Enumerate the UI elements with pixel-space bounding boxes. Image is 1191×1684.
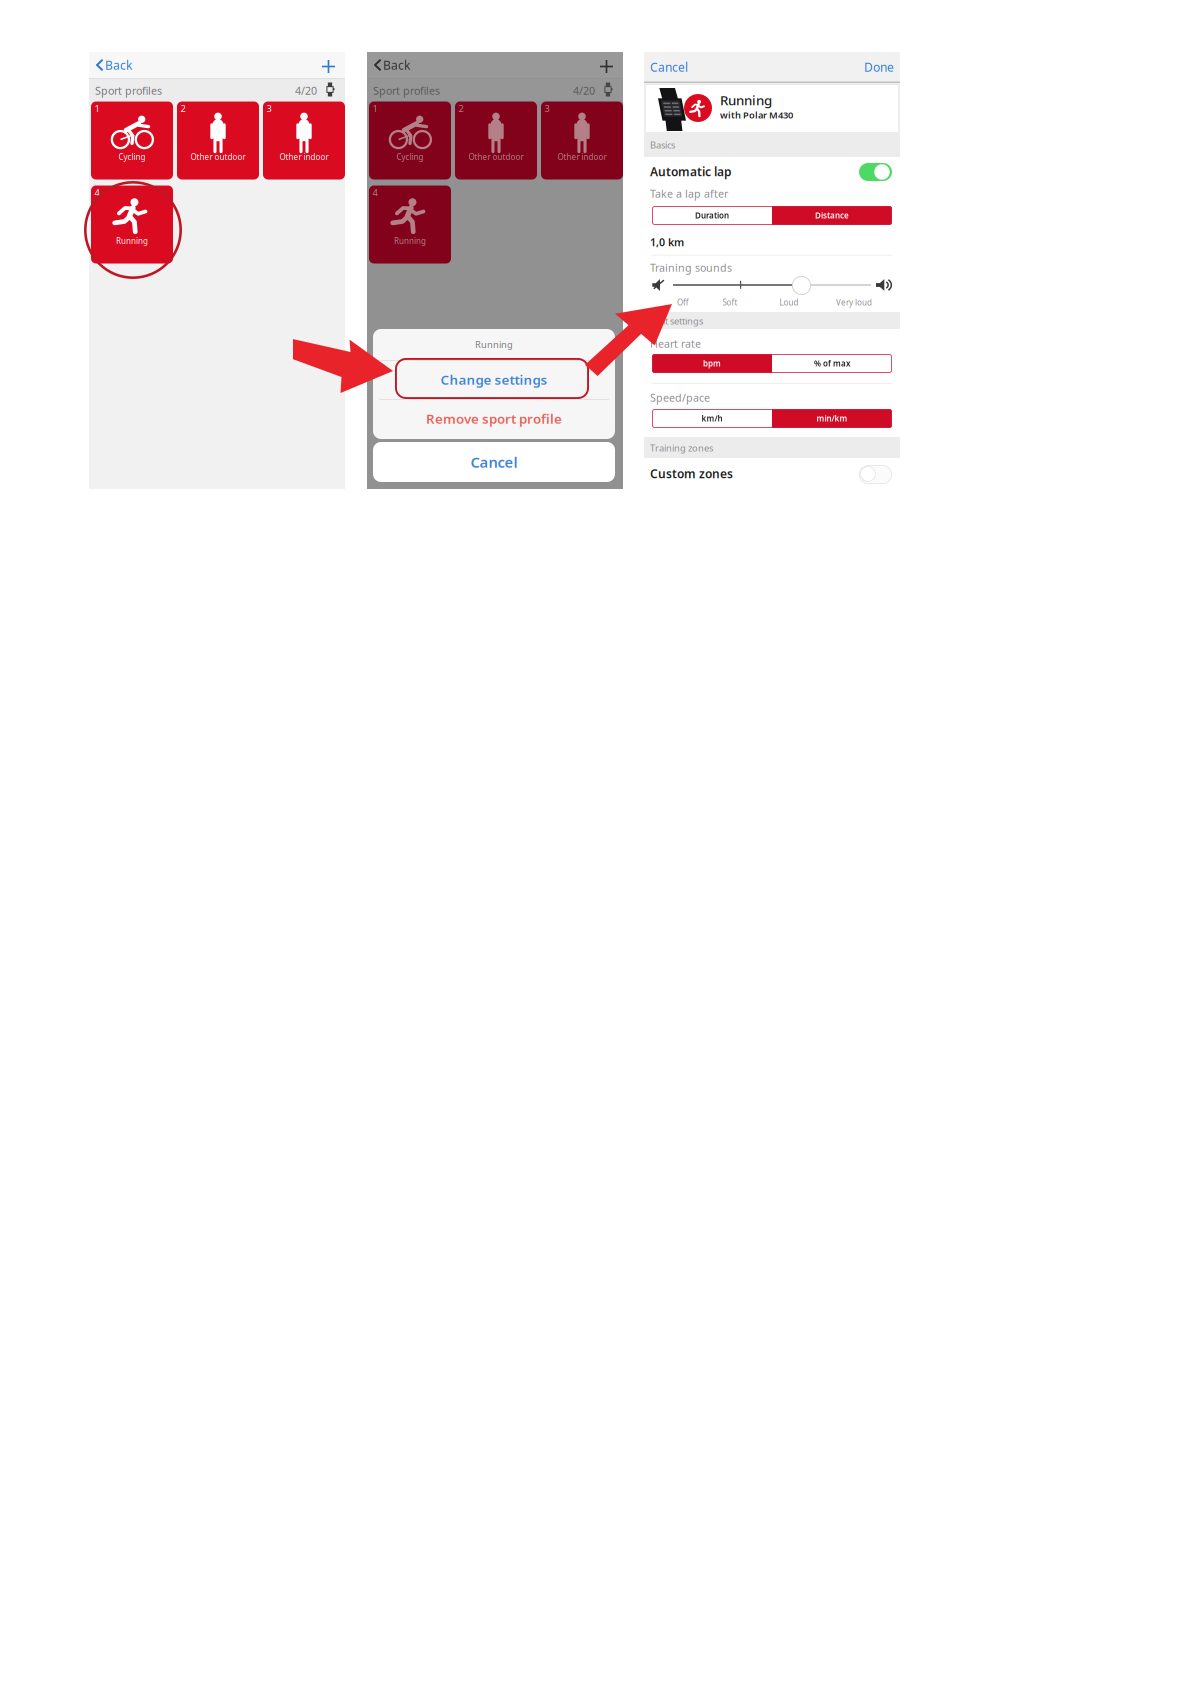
staticText: 4 xyxy=(372,186,377,199)
button[interactable]: 2 xyxy=(455,101,537,179)
staticText: Other outdoor xyxy=(190,152,245,162)
staticText: Back xyxy=(383,57,410,73)
button[interactable]: Add sport profile xyxy=(322,60,335,73)
staticText: Running xyxy=(116,236,148,246)
button[interactable]: Done xyxy=(824,59,894,75)
staticText: bpm xyxy=(703,358,721,369)
staticText: 3 xyxy=(544,102,549,115)
staticText: Sport profiles xyxy=(95,83,162,98)
staticText: Other indoor xyxy=(279,152,328,162)
staticText: Off xyxy=(677,297,689,308)
button[interactable]: Maximum training sounds xyxy=(876,278,892,292)
button[interactable]: Mute training sounds xyxy=(652,278,666,292)
button[interactable]: Cancel xyxy=(650,59,720,75)
staticText: Other outdoor xyxy=(468,152,523,162)
button[interactable]: Back xyxy=(374,57,436,73)
button[interactable]: Custom zones off xyxy=(859,465,892,484)
staticText: Done xyxy=(864,59,894,75)
staticText: with Polar M430 xyxy=(720,109,793,121)
button[interactable]: Add sport profile xyxy=(600,60,613,73)
staticText: Custom zones xyxy=(650,465,733,481)
button[interactable]: Back xyxy=(96,57,158,73)
staticText: 4 xyxy=(94,186,99,199)
staticText: Other indoor xyxy=(557,152,606,162)
button[interactable]: Remove sport profile xyxy=(373,399,615,438)
staticText: Sport profiles xyxy=(373,83,440,98)
button[interactable]: 3 xyxy=(263,101,345,179)
staticText: Automatic lap xyxy=(650,163,732,179)
button[interactable]: 4 xyxy=(369,185,451,263)
staticText: Running xyxy=(720,91,772,109)
staticText: Training sounds xyxy=(650,260,732,275)
staticText: Running xyxy=(475,338,513,351)
staticText: km/h xyxy=(701,413,722,424)
staticText: Take a lap after xyxy=(650,186,728,201)
button[interactable]: 1 xyxy=(369,101,451,179)
staticText: Remove sport profile xyxy=(426,410,562,427)
staticText: Soft xyxy=(722,297,737,308)
button[interactable]: Duration xyxy=(652,206,892,225)
staticText: % of max xyxy=(814,358,850,369)
staticText: Cycling xyxy=(118,152,145,162)
staticText: 4/20 xyxy=(573,83,595,98)
staticText: Back xyxy=(105,57,132,73)
button[interactable]: Automatic lap on xyxy=(859,163,892,181)
staticText: 3 xyxy=(266,102,271,115)
staticText: Unit settings xyxy=(650,315,703,327)
staticText: Cancel xyxy=(650,59,688,75)
button[interactable]: 2 xyxy=(177,101,259,179)
button[interactable]: 4 xyxy=(91,185,173,263)
staticText: Running xyxy=(394,236,426,246)
button[interactable]: Change settings xyxy=(373,360,615,399)
button[interactable]: Training sounds volume: Loud xyxy=(792,276,811,295)
staticText: Speed/pace xyxy=(650,390,710,405)
staticText: Basics xyxy=(650,139,675,151)
staticText: 1 xyxy=(94,102,99,115)
staticText: Cycling xyxy=(396,152,423,162)
button[interactable]: bpm xyxy=(652,354,892,373)
staticText: 2 xyxy=(458,102,463,115)
button[interactable]: 3 xyxy=(541,101,623,179)
button[interactable]: km/h xyxy=(652,409,892,428)
staticText: Change settings xyxy=(440,371,547,388)
staticText: 1,0 km xyxy=(650,235,684,249)
staticText: Training zones xyxy=(650,442,713,454)
staticText: Loud xyxy=(779,297,798,308)
staticText: 1 xyxy=(372,102,377,115)
button[interactable]: Cancel xyxy=(373,442,615,482)
button[interactable]: Connected watch xyxy=(325,82,335,96)
staticText: 2 xyxy=(180,102,185,115)
staticText: Distance xyxy=(815,210,849,221)
staticText: Very loud xyxy=(836,297,872,308)
staticText: min/km xyxy=(816,413,847,424)
staticText: 4/20 xyxy=(295,83,317,98)
staticText: Duration xyxy=(695,210,729,221)
button[interactable]: 1 xyxy=(91,101,173,179)
button[interactable]: Connected watch xyxy=(603,82,613,96)
staticText: Cancel xyxy=(470,452,517,472)
staticText: Heart rate xyxy=(650,336,701,351)
